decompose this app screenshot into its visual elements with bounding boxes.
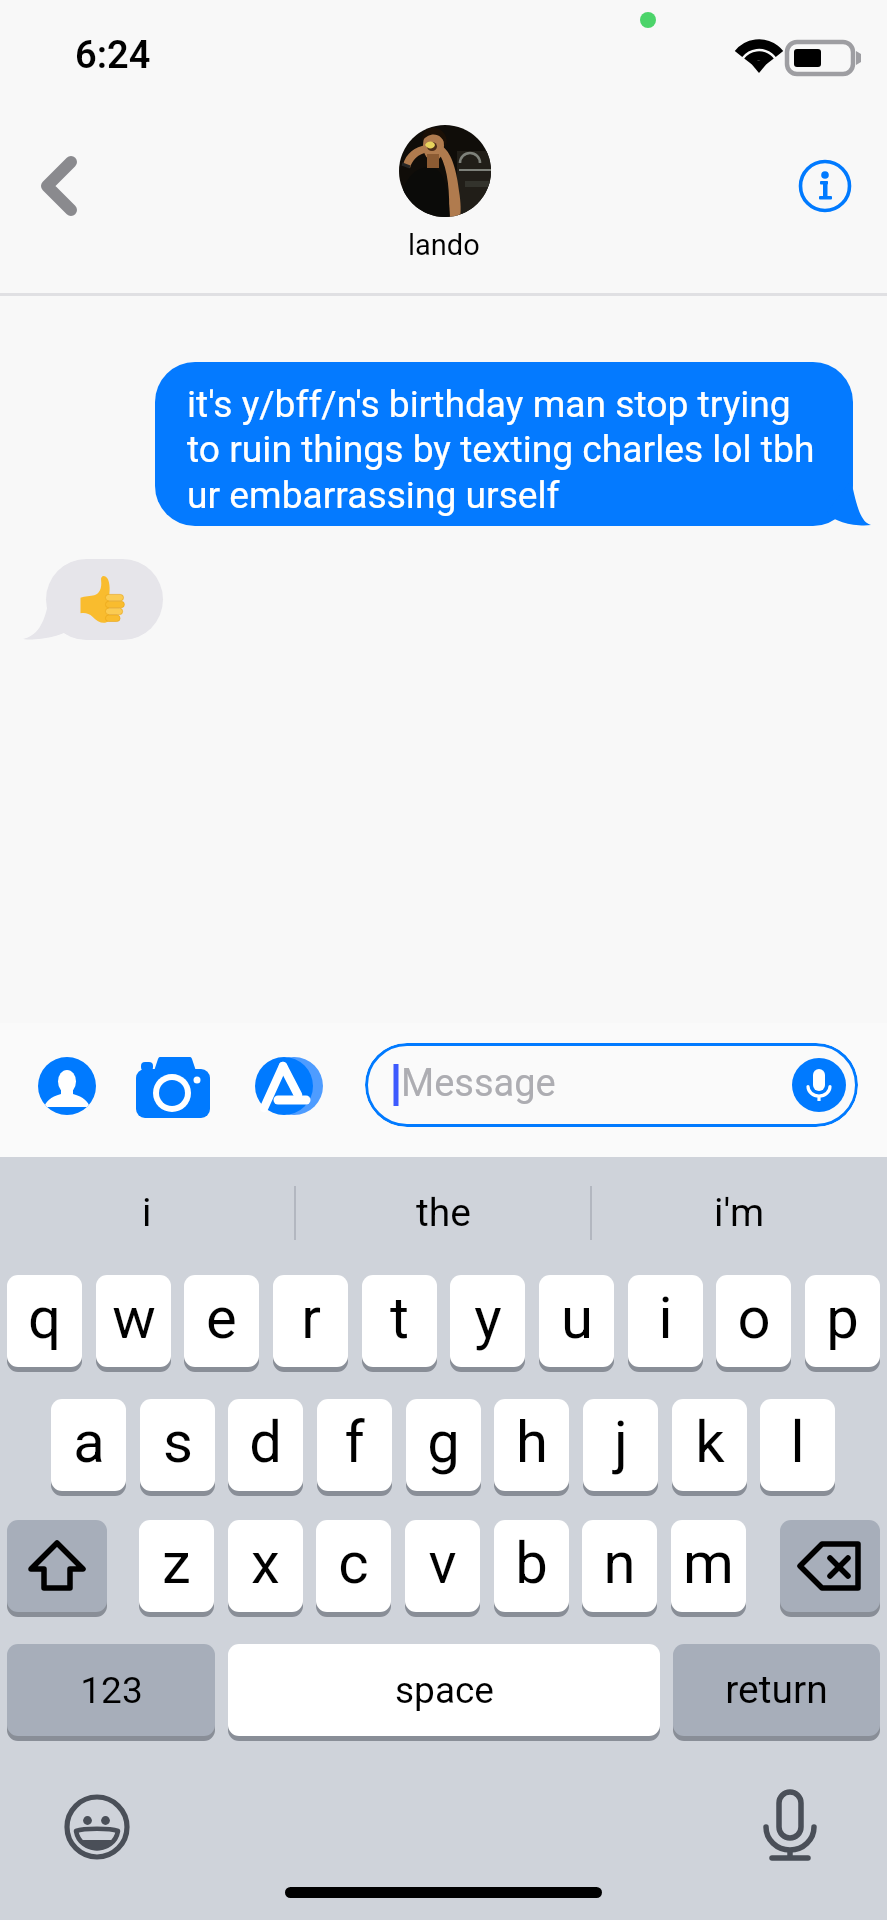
- staticText: c: [338, 1529, 369, 1597]
- button[interactable]: x: [228, 1520, 303, 1617]
- staticText: u: [561, 1284, 593, 1352]
- button[interactable]: w: [96, 1275, 171, 1372]
- staticText: d: [249, 1408, 282, 1476]
- button[interactable]: n: [582, 1520, 657, 1617]
- button[interactable]: Back: [18, 140, 90, 232]
- button[interactable]: t: [362, 1275, 437, 1372]
- staticText: k: [695, 1408, 725, 1476]
- button[interactable]: the: [296, 1157, 590, 1269]
- staticText: y: [474, 1284, 502, 1352]
- staticText: n: [603, 1529, 636, 1597]
- button[interactable]: Camera: [136, 1057, 210, 1118]
- button[interactable]: it's y/bff/n's birthday man stop trying …: [155, 362, 871, 526]
- staticText: f: [344, 1408, 365, 1476]
- button[interactable]: g: [406, 1399, 481, 1496]
- button[interactable]: l: [760, 1399, 835, 1496]
- staticText: v: [428, 1529, 457, 1597]
- staticText: x: [251, 1529, 280, 1597]
- button[interactable]: z: [139, 1520, 214, 1617]
- button[interactable]: return: [673, 1644, 880, 1741]
- staticText: w: [112, 1284, 156, 1352]
- staticText: b: [515, 1529, 548, 1597]
- button[interactable]: [23, 559, 163, 640]
- staticText: t: [390, 1284, 409, 1352]
- button[interactable]: i: [628, 1275, 703, 1372]
- button[interactable]: App Store: [247, 1052, 329, 1118]
- staticText: j: [614, 1408, 628, 1476]
- button[interactable]: c: [316, 1520, 391, 1617]
- button[interactable]: e: [184, 1275, 259, 1372]
- staticText: Message: [401, 1061, 556, 1106]
- button[interactable]: d: [228, 1399, 303, 1496]
- button[interactable]: m: [671, 1520, 746, 1617]
- staticText: i: [658, 1284, 673, 1352]
- button[interactable]: p: [805, 1275, 880, 1372]
- staticText: i: [142, 1190, 152, 1236]
- staticText: r: [301, 1284, 321, 1352]
- button[interactable]: i: [0, 1157, 294, 1269]
- button[interactable]: 123: [7, 1644, 215, 1741]
- button[interactable]: h: [494, 1399, 569, 1496]
- button[interactable]: a: [51, 1399, 126, 1496]
- button[interactable]: r: [273, 1275, 348, 1372]
- staticText: lando: [408, 228, 480, 262]
- button[interactable]: o: [716, 1275, 791, 1372]
- button[interactable]: j: [583, 1399, 658, 1496]
- button[interactable]: u: [539, 1275, 614, 1372]
- button[interactable]: Backspace: [780, 1520, 880, 1617]
- button[interactable]: Shift: [7, 1520, 107, 1617]
- staticText: o: [737, 1284, 771, 1352]
- staticText: l: [790, 1408, 805, 1476]
- staticText: the: [416, 1190, 471, 1236]
- staticText: h: [516, 1408, 548, 1476]
- button[interactable]: Message: [365, 1043, 858, 1127]
- button[interactable]: Emoji keyboard: [64, 1794, 130, 1860]
- staticText: g: [427, 1408, 460, 1476]
- staticText: 6:24: [75, 33, 151, 78]
- button[interactable]: i'm: [592, 1157, 886, 1269]
- staticText: a: [73, 1408, 105, 1476]
- button[interactable]: y: [450, 1275, 525, 1372]
- button[interactable]: [399, 125, 491, 217]
- button[interactable]: space: [228, 1644, 660, 1741]
- staticText: s: [163, 1408, 193, 1476]
- button[interactable]: Dictation: [757, 1788, 823, 1864]
- button[interactable]: Dictate: [792, 1058, 846, 1112]
- button[interactable]: f: [317, 1399, 392, 1496]
- button[interactable]: Details: [793, 154, 857, 218]
- button[interactable]: k: [672, 1399, 747, 1496]
- staticText: 123: [80, 1669, 143, 1712]
- staticText: m: [683, 1529, 734, 1597]
- staticText: q: [28, 1284, 61, 1352]
- button[interactable]: b: [494, 1520, 569, 1617]
- button[interactable]: v: [405, 1520, 480, 1617]
- button[interactable]: q: [7, 1275, 82, 1372]
- staticText: i'm: [714, 1190, 765, 1236]
- button[interactable]: Contacts: [38, 1057, 95, 1114]
- staticText: p: [826, 1284, 859, 1352]
- staticText: z: [162, 1529, 191, 1597]
- button[interactable]: s: [140, 1399, 215, 1496]
- staticText: e: [206, 1284, 237, 1352]
- staticText: it's y/bff/n's birthday man stop trying …: [187, 382, 819, 517]
- staticText: space: [395, 1669, 494, 1712]
- staticText: return: [725, 1667, 828, 1713]
